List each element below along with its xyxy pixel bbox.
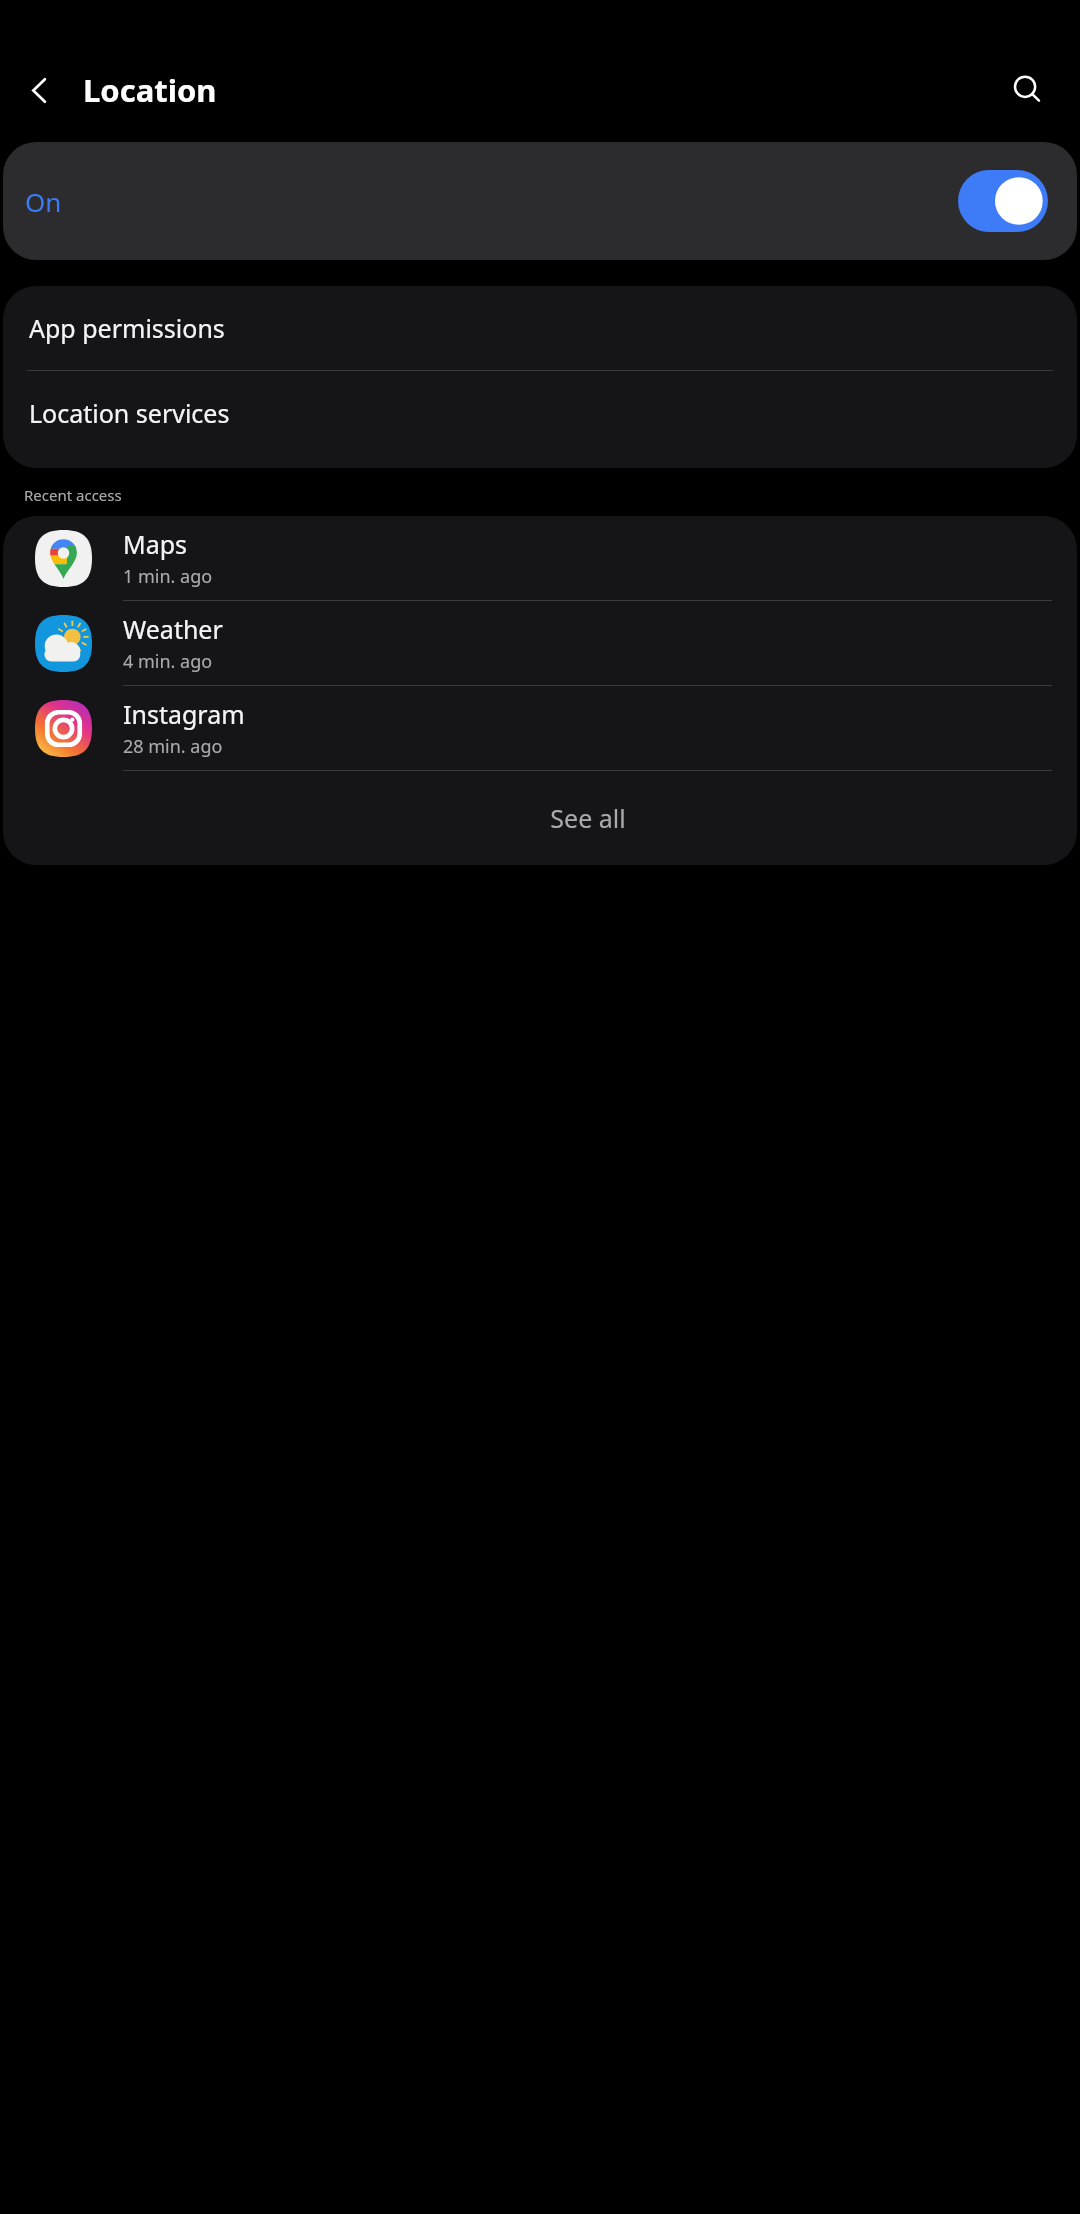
button[interactable]: On [3, 142, 1077, 260]
staticText: Instagram [123, 697, 245, 731]
button[interactable]: Location services [3, 371, 1077, 455]
staticText: 1 min. ago [123, 564, 213, 589]
button[interactable]: App permissions [3, 286, 1077, 370]
staticText: Recent access [24, 485, 122, 505]
staticText: App permissions [29, 311, 225, 345]
button[interactable]: Maps [3, 516, 1077, 600]
button[interactable]: Search [995, 58, 1059, 122]
button[interactable]: See all [3, 771, 1077, 865]
button[interactable]: Back [7, 58, 71, 122]
staticText: See all [550, 801, 626, 835]
staticText: Location [83, 69, 217, 111]
button[interactable]: Instagram [3, 686, 1077, 770]
staticText: Maps [123, 527, 188, 561]
staticText: 4 min. ago [123, 649, 213, 674]
staticText: 28 min. ago [123, 734, 223, 759]
staticText: On [25, 184, 62, 219]
button[interactable]: Weather [3, 601, 1077, 685]
staticText: Weather [123, 612, 223, 646]
staticText: Location services [29, 396, 230, 430]
